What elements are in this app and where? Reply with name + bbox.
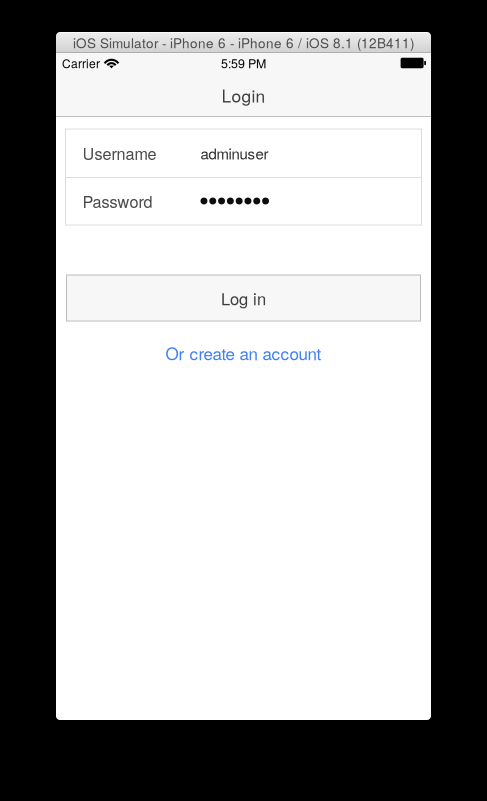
staticText: Or create an account <box>165 341 321 365</box>
staticText: Login <box>221 83 265 107</box>
staticText: 5:59 PM <box>221 54 266 72</box>
staticText: Carrier <box>62 54 100 72</box>
staticText: adminuser <box>200 142 268 164</box>
button[interactable]: Log in <box>66 275 420 321</box>
staticText: Password <box>82 189 152 213</box>
staticText: iOS Simulator - iPhone 6 - iPhone 6 / iO… <box>73 33 414 52</box>
button[interactable]: Or create an account <box>153 342 333 364</box>
staticText: Username <box>82 141 156 165</box>
staticText: Log in <box>221 286 266 310</box>
